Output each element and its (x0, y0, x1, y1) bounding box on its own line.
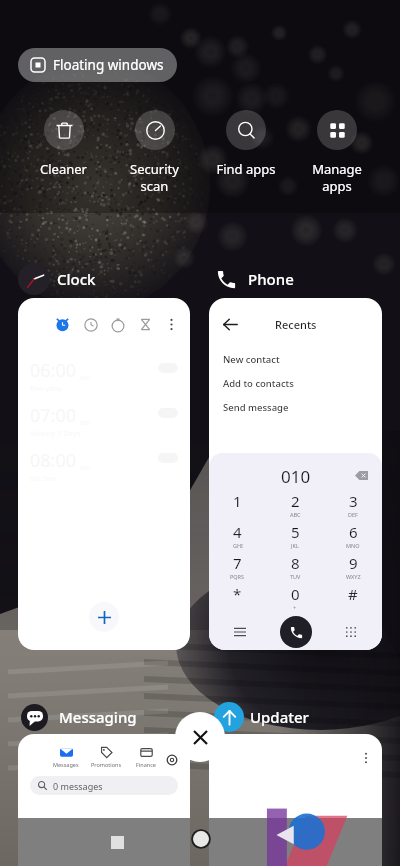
staticText: New contact (223, 353, 280, 366)
button[interactable]: Send message (209, 395, 382, 419)
other: Alarm (55, 317, 70, 332)
button[interactable]: Floating windows (18, 48, 177, 82)
other: Keypad (345, 626, 357, 638)
staticText: * (233, 584, 242, 604)
button[interactable]: * (209, 584, 266, 615)
button[interactable]: Messaging (18, 700, 190, 734)
staticText: PQRS (230, 573, 245, 580)
staticText: Finance (136, 761, 156, 768)
staticText: GHI (233, 542, 243, 549)
staticText: Manage apps (312, 160, 362, 195)
staticText: WXYZ (346, 573, 361, 580)
button[interactable]: Alarm (18, 298, 190, 650)
button[interactable]: Clock (18, 262, 190, 296)
button[interactable]: # (324, 584, 382, 615)
button[interactable]: 6 (324, 522, 382, 553)
other: Stopwatch (111, 318, 125, 332)
button[interactable]: Manage apps (291, 110, 382, 195)
staticText: MNO (346, 542, 360, 549)
staticText: Security scan (130, 160, 179, 195)
staticText: 5 (291, 522, 300, 542)
button[interactable]: Messages (18, 734, 190, 866)
staticText: Recents (275, 317, 317, 332)
staticText: # (348, 584, 358, 604)
button[interactable]: Close all (175, 712, 225, 762)
other: Timer (139, 318, 152, 331)
staticText: 0 messages (53, 780, 103, 792)
staticText: 3 (349, 491, 358, 511)
staticText: 6 (349, 522, 358, 542)
button[interactable]: 9 (324, 553, 382, 584)
button[interactable]: 5 (266, 522, 324, 553)
button[interactable]: 4 (209, 522, 266, 553)
staticText: 2 (291, 491, 300, 511)
button[interactable]: 1 (209, 491, 266, 522)
button[interactable]: Add alarm (89, 602, 119, 632)
staticText: Updater (250, 707, 309, 727)
staticText: Messaging (59, 707, 137, 727)
button[interactable]: 0 messages (30, 776, 178, 795)
staticText: 7 (233, 553, 242, 573)
button[interactable]: Back (209, 298, 382, 650)
staticText: 1 (233, 491, 242, 511)
button[interactable]: Call (280, 616, 312, 648)
staticText: DEF (348, 511, 358, 518)
button[interactable]: Add to contacts (209, 371, 382, 395)
other: Settings (166, 754, 178, 766)
staticText: 010 (281, 465, 311, 488)
button[interactable]: Find apps (200, 110, 291, 178)
staticText: 0 (291, 584, 300, 604)
other: Back (223, 317, 238, 332)
staticText: Find apps (216, 160, 276, 178)
staticText: Promotions (91, 761, 122, 768)
other: Backspace (355, 471, 368, 480)
button[interactable]: Security scan (109, 110, 200, 195)
button[interactable]: Phone (209, 262, 381, 296)
staticText: Cleaner (40, 160, 87, 178)
staticText: + (293, 604, 297, 611)
staticText: Floating windows (53, 56, 164, 74)
button[interactable]: More options (209, 734, 382, 866)
staticText: JKL (291, 542, 299, 549)
staticText: Clock (57, 269, 96, 289)
button[interactable]: Cleaner (18, 110, 109, 178)
staticText: 4 (233, 522, 242, 542)
button[interactable]: 7 (209, 553, 266, 584)
button[interactable]: 8 (266, 553, 324, 584)
button[interactable]: Promotions (91, 746, 122, 768)
other: More options (360, 752, 372, 764)
button[interactable]: 3 (324, 491, 382, 522)
other: More options (165, 318, 178, 331)
staticText: Add to contacts (223, 377, 294, 390)
button[interactable]: New contact (209, 347, 382, 371)
button[interactable]: Messages (53, 746, 79, 768)
staticText: 9 (349, 553, 358, 573)
button[interactable]: 0 (266, 584, 324, 615)
staticText: TUV (290, 573, 301, 580)
other: World clock (84, 318, 98, 332)
button[interactable]: Finance (136, 746, 156, 768)
staticText: Messages (53, 761, 79, 768)
other: Call log (234, 626, 246, 638)
staticText: Phone (248, 269, 294, 289)
staticText: ABC (290, 511, 301, 518)
button[interactable]: 2 (266, 491, 324, 522)
staticText: 8 (291, 553, 300, 573)
button[interactable]: Updater (209, 700, 381, 734)
staticText: Send message (223, 401, 289, 414)
